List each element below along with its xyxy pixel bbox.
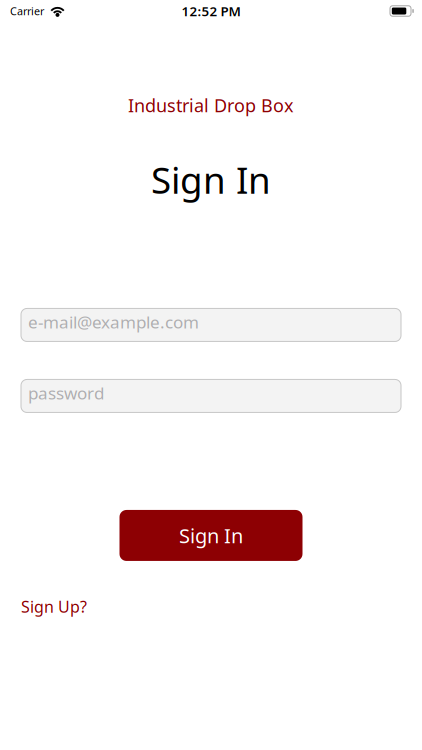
staticText: e-mail@example.com xyxy=(28,310,199,333)
staticText: Sign In xyxy=(179,522,243,549)
button[interactable]: Sign Up? xyxy=(21,596,87,617)
button[interactable]: e-mail@example.com xyxy=(21,308,401,341)
button[interactable]: Sign In xyxy=(119,510,302,561)
staticText: Carrier xyxy=(10,4,44,18)
staticText: 12:52 PM xyxy=(181,2,240,20)
staticText: Sign In xyxy=(151,154,271,204)
staticText: Sign Up? xyxy=(21,596,87,617)
staticText: password xyxy=(28,381,104,404)
button[interactable]: password xyxy=(21,379,401,412)
staticText: Industrial Drop Box xyxy=(128,93,294,117)
